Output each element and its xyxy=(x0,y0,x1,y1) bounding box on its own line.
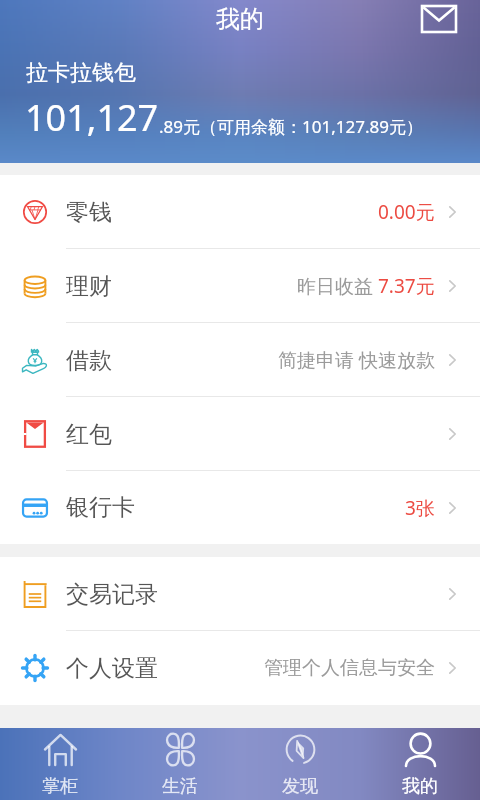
staticText: 理财 xyxy=(66,272,112,301)
staticText: 昨日收益 xyxy=(297,273,378,299)
staticText: 借款 xyxy=(66,346,112,375)
staticText: 发现 xyxy=(282,775,318,798)
staticText: 掌柜 xyxy=(42,775,78,798)
button[interactable]: 发现 xyxy=(240,728,360,800)
button[interactable]: 银行卡 xyxy=(0,471,480,544)
button[interactable]: 我的 xyxy=(360,728,480,800)
staticText: 简捷申请 快速放款 xyxy=(278,347,435,373)
button[interactable]: 掌柜 xyxy=(0,728,120,800)
staticText: 银行卡 xyxy=(66,493,135,522)
staticText: 我的 xyxy=(216,4,264,34)
staticText: 生活 xyxy=(162,775,198,798)
staticText: .89元（可用余额：101,127.89元） xyxy=(159,115,423,138)
staticText: 0.00元 xyxy=(378,199,435,225)
button[interactable]: 交易记录 xyxy=(0,557,480,631)
button[interactable]: 红包 xyxy=(0,397,480,471)
button[interactable]: 生活 xyxy=(120,728,240,800)
button[interactable]: 理财 xyxy=(0,249,480,323)
staticText: 管理个人信息与安全 xyxy=(264,656,435,680)
staticText: 交易记录 xyxy=(66,580,158,609)
button[interactable]: 个人设置 xyxy=(0,631,480,705)
staticText: 我的 xyxy=(402,775,438,798)
staticText: 红包 xyxy=(66,420,112,449)
button[interactable]: 零钱 xyxy=(0,175,480,249)
staticText: 7.37元 xyxy=(378,273,435,299)
staticText: 3张 xyxy=(405,495,435,521)
staticText: 零钱 xyxy=(66,198,112,227)
button[interactable]: Messages xyxy=(417,0,461,37)
staticText: 拉卡拉钱包 xyxy=(26,59,136,87)
staticText: 个人设置 xyxy=(66,654,158,683)
button[interactable]: 借款 xyxy=(0,323,480,397)
staticText: 101,127 xyxy=(25,93,159,142)
